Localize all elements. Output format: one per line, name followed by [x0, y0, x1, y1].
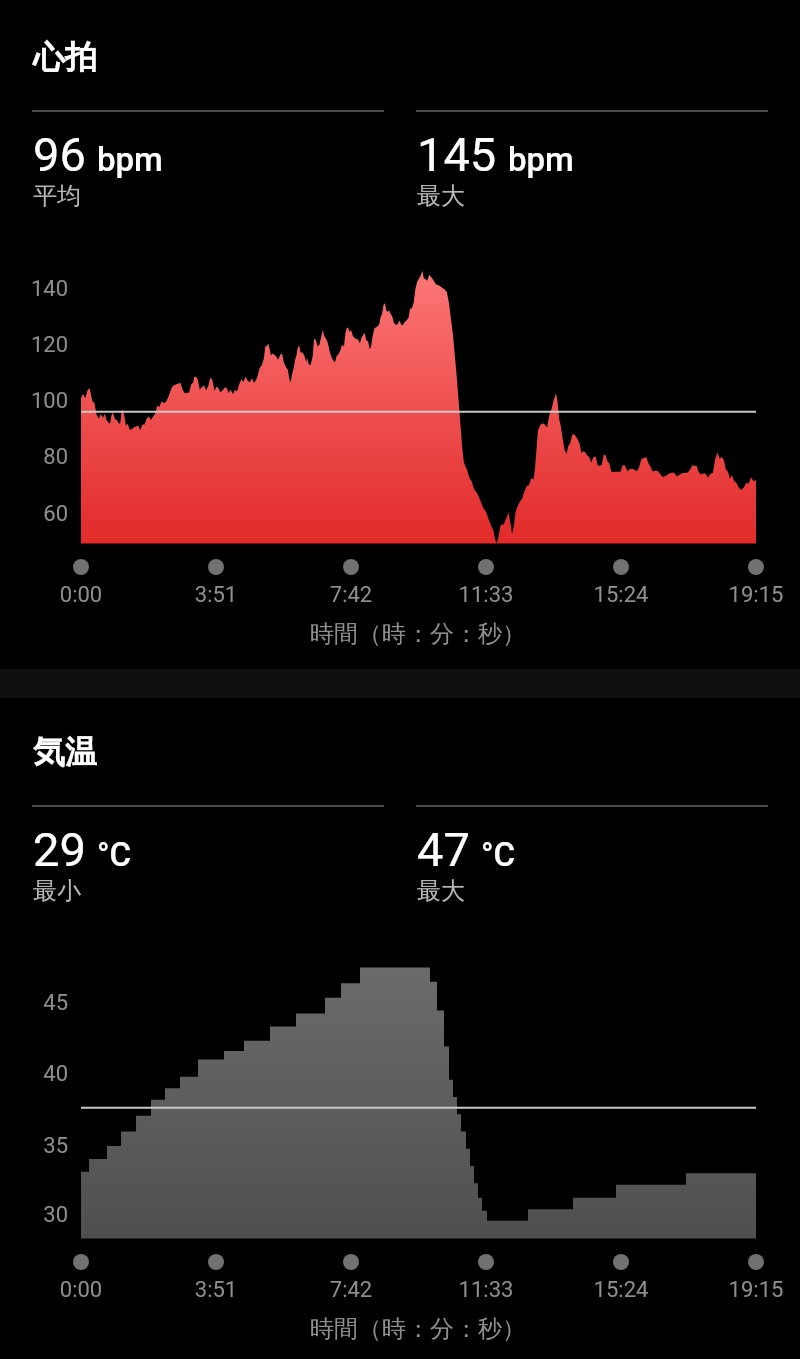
- staticText: 19:15: [696, 582, 800, 608]
- staticText: bpm: [508, 140, 574, 179]
- staticText: 最大: [417, 876, 465, 906]
- staticText: 気温: [33, 732, 97, 772]
- staticText: 3:51: [156, 582, 276, 608]
- staticText: 80: [0, 444, 68, 470]
- staticText: °C: [97, 835, 132, 874]
- staticText: 平均: [33, 181, 81, 211]
- staticText: 29: [33, 822, 86, 877]
- staticText: 7:42: [291, 1277, 411, 1303]
- staticText: 120: [0, 332, 68, 358]
- staticText: 140: [0, 276, 68, 302]
- staticText: 45: [0, 990, 68, 1016]
- staticText: 時間（時：分：秒）: [18, 619, 800, 649]
- staticText: 最小: [33, 876, 81, 906]
- button[interactable]: 気温: [16, 715, 316, 777]
- staticText: 30: [0, 1202, 68, 1228]
- staticText: 0:00: [21, 582, 141, 608]
- button[interactable]: 47: [416, 805, 768, 905]
- button[interactable]: 29: [32, 805, 384, 905]
- staticText: °C: [481, 835, 516, 874]
- button[interactable]: 心拍: [16, 20, 316, 82]
- button[interactable]: 96: [32, 110, 384, 210]
- staticText: 7:42: [291, 582, 411, 608]
- staticText: 11:33: [426, 1277, 546, 1303]
- staticText: 47: [417, 822, 470, 877]
- staticText: 60: [0, 501, 68, 527]
- staticText: 145: [417, 127, 497, 182]
- staticText: 0:00: [21, 1277, 141, 1303]
- staticText: 15:24: [561, 1277, 681, 1303]
- staticText: 35: [0, 1133, 68, 1159]
- staticText: 40: [0, 1061, 68, 1087]
- staticText: 11:33: [426, 582, 546, 608]
- staticText: 3:51: [156, 1277, 276, 1303]
- staticText: 19:15: [696, 1277, 800, 1303]
- button[interactable]: 145: [416, 110, 768, 210]
- staticText: 96: [33, 127, 86, 182]
- staticText: 最大: [417, 181, 465, 211]
- staticText: 100: [0, 388, 68, 414]
- staticText: 時間（時：分：秒）: [18, 1314, 800, 1344]
- staticText: bpm: [97, 140, 163, 179]
- staticText: 15:24: [561, 582, 681, 608]
- staticText: 心拍: [33, 37, 97, 77]
